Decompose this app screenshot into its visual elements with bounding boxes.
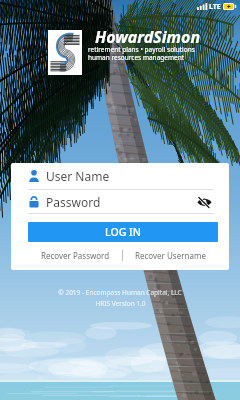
staticText: human resources management bbox=[88, 53, 185, 62]
button[interactable]: Password bbox=[28, 190, 218, 213]
staticText: © 2019 - Encompass Human Capital, LLC bbox=[58, 288, 182, 297]
button[interactable]: Show password bbox=[197, 192, 212, 212]
staticText: User Name bbox=[46, 168, 110, 184]
staticText: Recover Username bbox=[135, 250, 206, 261]
staticText: HRIS Version 1.0 bbox=[95, 299, 146, 308]
staticText: Recover Password bbox=[41, 250, 110, 261]
button[interactable]: LOG IN bbox=[28, 222, 218, 242]
staticText: LOG IN bbox=[105, 225, 141, 239]
staticText: retirement plans • payroll solutions bbox=[88, 45, 195, 54]
button[interactable]: User Name bbox=[28, 163, 218, 189]
button[interactable]: Recover Password bbox=[28, 250, 122, 261]
staticText: LTE bbox=[209, 2, 221, 12]
staticText: HowardSimon bbox=[95, 26, 201, 48]
staticText: Password bbox=[46, 194, 101, 210]
button[interactable]: Recover Username bbox=[123, 250, 218, 261]
